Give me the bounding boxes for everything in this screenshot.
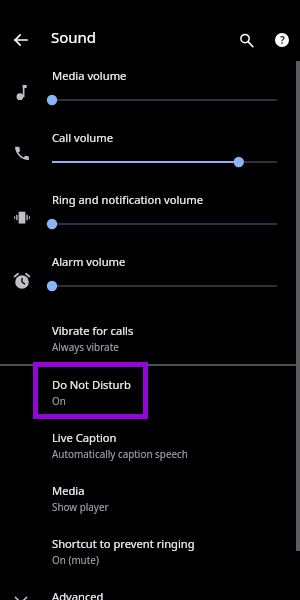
button[interactable]: Call volume (0, 120, 300, 182)
staticText: Shortcut to prevent ringing (52, 536, 195, 551)
button[interactable]: Alarm volume (0, 244, 300, 306)
button[interactable]: Media (0, 470, 300, 523)
staticText: Media (52, 483, 85, 498)
button[interactable]: Live Caption (0, 417, 300, 470)
staticText: Automatically caption speech (52, 447, 188, 460)
staticText: Always vibrate (52, 340, 119, 353)
staticText: On (mute) (52, 553, 99, 566)
staticText: On (52, 394, 66, 407)
button[interactable]: Shortcut to prevent ringing (0, 523, 300, 576)
staticText: Show player (52, 500, 109, 513)
button[interactable]: Media volume (0, 58, 300, 120)
staticText: Call volume (52, 130, 114, 145)
staticText: Advanced (52, 589, 104, 600)
button[interactable]: Help (270, 28, 294, 52)
staticText: Do Not Disturb (52, 377, 131, 392)
staticText: Vibrate for calls (52, 323, 134, 338)
button[interactable]: Ring and notification volume (0, 182, 300, 244)
other: Expand advanced settings (14, 596, 28, 600)
button[interactable]: Vibrate for calls (0, 310, 300, 363)
button[interactable]: Advanced (0, 576, 300, 600)
button[interactable]: Back (9, 28, 33, 52)
button[interactable]: Search (234, 28, 258, 52)
staticText: Ring and notification volume (52, 192, 204, 207)
staticText: Live Caption (52, 430, 117, 445)
staticText: Media volume (52, 68, 127, 83)
staticText: Sound (51, 27, 97, 47)
staticText: Alarm volume (52, 254, 126, 269)
button[interactable]: Do Not Disturb (0, 364, 300, 417)
staticText: ? (280, 33, 285, 47)
